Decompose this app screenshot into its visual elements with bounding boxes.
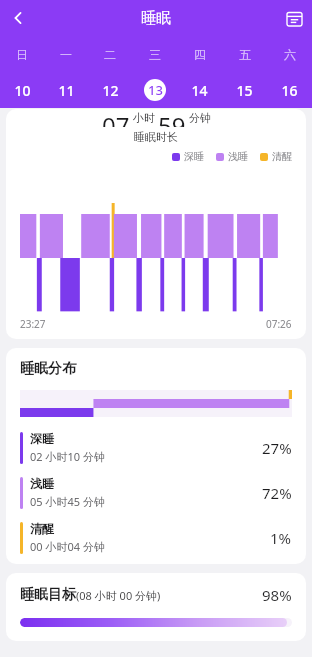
- button[interactable]: 14: [177, 72, 222, 108]
- staticText: 15: [236, 81, 253, 100]
- staticText: 13: [148, 81, 163, 99]
- staticText: 11: [58, 81, 75, 100]
- staticText: 14: [191, 81, 208, 100]
- button[interactable]: 12: [88, 72, 132, 108]
- staticText: 分钟: [189, 111, 211, 125]
- staticText: 四: [194, 47, 206, 62]
- staticText: 59: [158, 109, 186, 127]
- staticText: 98%: [262, 585, 292, 605]
- staticText: 07: [102, 109, 130, 127]
- staticText: 睡眠: [141, 9, 171, 28]
- button[interactable]: Calendar: [276, 0, 312, 36]
- staticText: 浅睡: [30, 476, 54, 491]
- staticText: 睡眠分布: [20, 360, 76, 378]
- staticText: 五: [239, 47, 251, 62]
- staticText: 二: [104, 47, 116, 62]
- staticText: 睡眠目标: [20, 586, 76, 604]
- staticText: 睡眠时长: [6, 130, 306, 144]
- staticText: 23:27: [20, 317, 46, 331]
- staticText: (08 小时 00 分钟): [76, 588, 161, 603]
- staticText: 清醒: [30, 521, 54, 536]
- button[interactable]: 深睡: [20, 431, 292, 464]
- staticText: 深睡: [184, 150, 204, 163]
- staticText: 00 小时04 分钟: [30, 539, 105, 554]
- staticText: 12: [102, 81, 119, 100]
- staticText: 浅睡: [228, 150, 248, 163]
- button[interactable]: 10: [0, 72, 44, 108]
- staticText: 07:26: [266, 317, 292, 331]
- button[interactable]: Back: [0, 0, 36, 36]
- staticText: 02 小时10 分钟: [30, 449, 105, 464]
- staticText: 三: [149, 47, 161, 62]
- button[interactable]: 13: [132, 72, 177, 108]
- button[interactable]: 浅睡: [20, 476, 292, 509]
- staticText: 深睡: [30, 431, 54, 446]
- staticText: 六: [284, 47, 296, 62]
- staticText: 10: [14, 81, 31, 100]
- staticText: 1%: [270, 528, 292, 548]
- staticText: 一: [60, 47, 72, 62]
- button[interactable]: 11: [44, 72, 88, 108]
- staticText: 日: [16, 47, 28, 62]
- staticText: 清醒: [272, 150, 292, 163]
- staticText: 05 小时45 分钟: [30, 494, 105, 509]
- staticText: 小时: [133, 111, 155, 125]
- button[interactable]: 16: [267, 72, 312, 108]
- staticText: 72%: [262, 483, 292, 503]
- staticText: 16: [281, 81, 298, 100]
- staticText: 27%: [262, 438, 292, 458]
- button[interactable]: 15: [222, 72, 267, 108]
- button[interactable]: 清醒: [20, 521, 292, 554]
